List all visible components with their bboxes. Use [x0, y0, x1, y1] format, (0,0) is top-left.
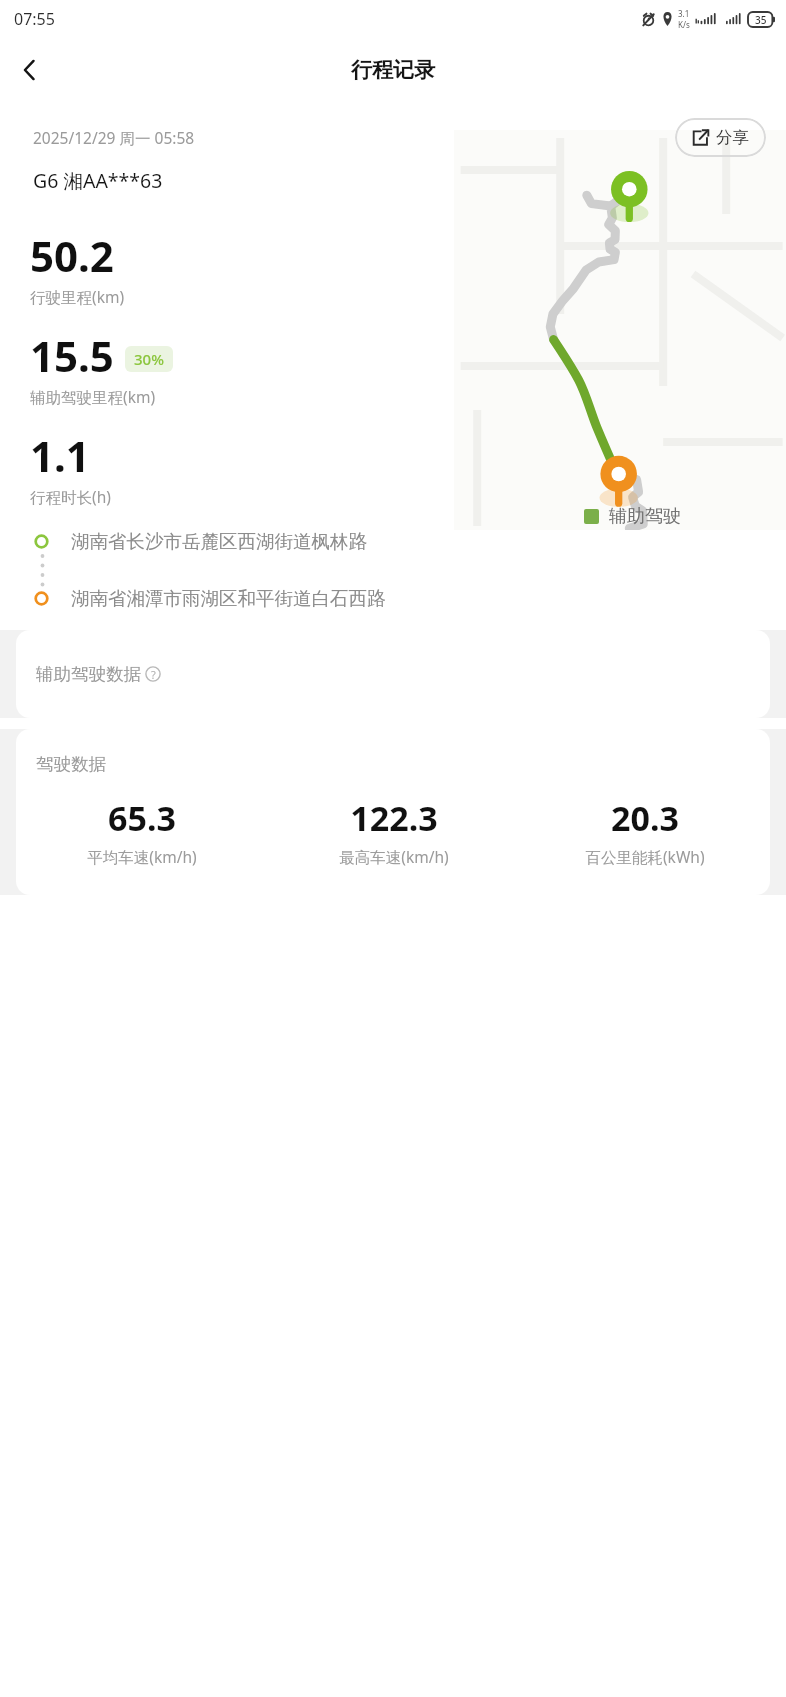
button[interactable]: 分享 [675, 118, 766, 157]
staticText: 3.1 [678, 8, 690, 19]
button[interactable]: 驾驶数据 [16, 729, 770, 895]
staticText: 辅助驾驶里程(km) [30, 386, 156, 407]
staticText: 湖南省湘潭市雨湖区和平街道白石西路 [71, 587, 386, 610]
staticText: 20.3 [611, 795, 679, 841]
staticText: 分享 [716, 127, 749, 148]
button[interactable]: 辅助驾驶数据 [16, 630, 770, 718]
staticText: 07:55 [14, 8, 55, 30]
staticText: 1.1 [30, 427, 90, 484]
staticText: 最高车速(km/h) [339, 846, 449, 867]
staticText: 行驶里程(km) [30, 286, 125, 307]
staticText: 湖南省长沙市岳麓区西湖街道枫林路 [71, 530, 367, 553]
staticText: ? [151, 667, 156, 682]
staticText: 15.5 [30, 327, 114, 384]
staticText: K/s [678, 19, 690, 30]
staticText: 50.2 [30, 227, 114, 284]
staticText: 百公里能耗(kWh) [585, 846, 705, 867]
staticText: 驾驶数据 [36, 753, 106, 775]
staticText: 辅助驾驶数据 [36, 663, 141, 685]
staticText: G6 湘AA***63 [33, 167, 163, 194]
button[interactable]: Back [5, 45, 55, 95]
staticText: 30% [134, 349, 164, 369]
staticText: 平均车速(km/h) [87, 846, 197, 867]
staticText: 行程记录 [351, 57, 435, 83]
staticText: 行程时长(h) [30, 486, 111, 507]
staticText: 122.3 [350, 795, 438, 841]
staticText: 2025/12/29 周一 05:58 [33, 127, 195, 148]
staticText: 辅助驾驶 [609, 505, 681, 528]
staticText: 35 [755, 13, 767, 27]
staticText: 65.3 [108, 795, 176, 841]
